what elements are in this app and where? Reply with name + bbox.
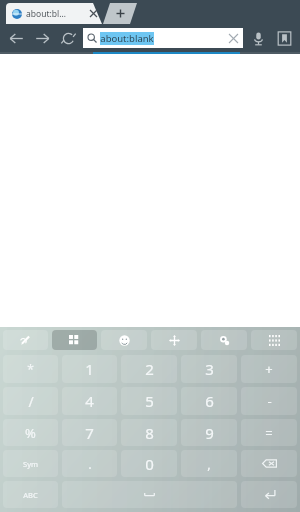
button[interactable]: Forward [29,25,55,51]
button[interactable]: about:bl… [6,3,102,24]
button[interactable]: 2 [121,355,177,383]
button[interactable]: New tab [103,3,137,24]
staticText: 1 [85,359,94,379]
button[interactable]: Sym [3,450,58,477]
staticText: ABC [23,490,38,500]
staticText: 7 [85,423,94,443]
button[interactable]: Enter [241,481,297,508]
button[interactable]: Clear [227,32,239,44]
button[interactable]: Voice search [245,25,271,51]
button[interactable]: Number pad [251,330,297,350]
staticText: Sym [23,459,38,469]
button[interactable]: Handwriting [3,330,48,350]
button[interactable]: about:blank [83,28,243,48]
button[interactable]: - [241,387,297,415]
staticText: 8 [145,423,154,443]
button[interactable]: % [3,419,58,446]
staticText: + [265,360,273,378]
button[interactable]: 8 [121,419,177,446]
button[interactable]: + [241,355,297,383]
button[interactable]: Reload [55,25,81,51]
button[interactable]: 7 [62,419,117,446]
staticText: about:blank [100,32,154,45]
staticText: 5 [145,391,154,411]
button[interactable]: Move cursor [151,330,197,350]
staticText: . [88,455,92,473]
staticText: 4 [85,391,94,411]
staticText: % [25,424,36,442]
button[interactable]: 0 [121,450,177,477]
button[interactable]: Keyboard layouts [52,330,97,350]
staticText: 9 [205,423,214,443]
button[interactable]: Close tab [88,8,99,19]
button[interactable]: Settings [201,330,247,350]
button[interactable]: 5 [121,387,177,415]
staticText: 2 [145,359,154,379]
button[interactable]: ABC [3,481,58,508]
staticText: / [28,392,34,411]
button[interactable]: 9 [181,419,237,446]
button[interactable]: Space [62,481,237,508]
staticText: * [27,361,34,377]
button[interactable]: * [3,355,58,383]
staticText: 6 [205,391,214,411]
button[interactable]: Back [3,25,29,51]
button[interactable]: , [181,450,237,477]
button[interactable]: 3 [181,355,237,383]
button[interactable]: 1 [62,355,117,383]
staticText: 0 [145,454,154,474]
button[interactable]: / [3,387,58,415]
button[interactable]: = [241,419,297,446]
button[interactable]: 4 [62,387,117,415]
button[interactable]: Backspace [241,450,297,477]
staticText: = [265,424,273,442]
button[interactable]: 6 [181,387,237,415]
staticText: , [207,455,211,473]
staticText: - [267,392,272,410]
button[interactable]: Emoji [101,330,147,350]
staticText: about:bl… [26,8,66,20]
staticText: 3 [205,359,214,379]
button[interactable]: Bookmarks [271,25,297,51]
